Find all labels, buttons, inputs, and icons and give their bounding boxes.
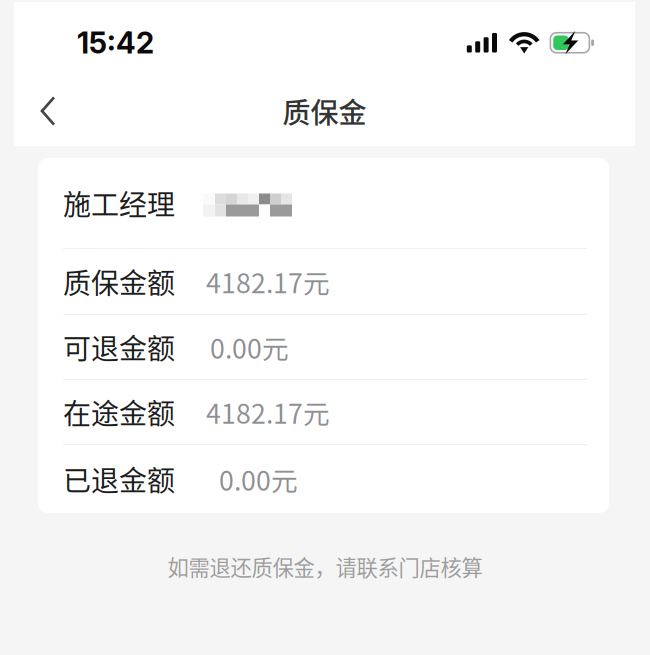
staticText: 15:42 — [77, 25, 154, 60]
staticText: 0.00元 — [219, 460, 298, 498]
staticText: 4182.17元 — [206, 393, 330, 431]
staticText: 可退金额 — [63, 327, 175, 367]
staticText: 0.00元 — [210, 328, 289, 366]
staticText: 质保金 — [282, 91, 366, 131]
staticText: 4182.17元 — [206, 262, 330, 301]
staticText: 如需退还质保金，请联系门店核算 — [167, 551, 482, 582]
staticText: 已退金额 — [63, 459, 175, 499]
staticText: 在途金额 — [63, 392, 175, 432]
staticText: 质保金额 — [63, 261, 175, 302]
staticText: 施工经理 — [63, 183, 175, 223]
button[interactable]: Back — [14, 81, 78, 141]
